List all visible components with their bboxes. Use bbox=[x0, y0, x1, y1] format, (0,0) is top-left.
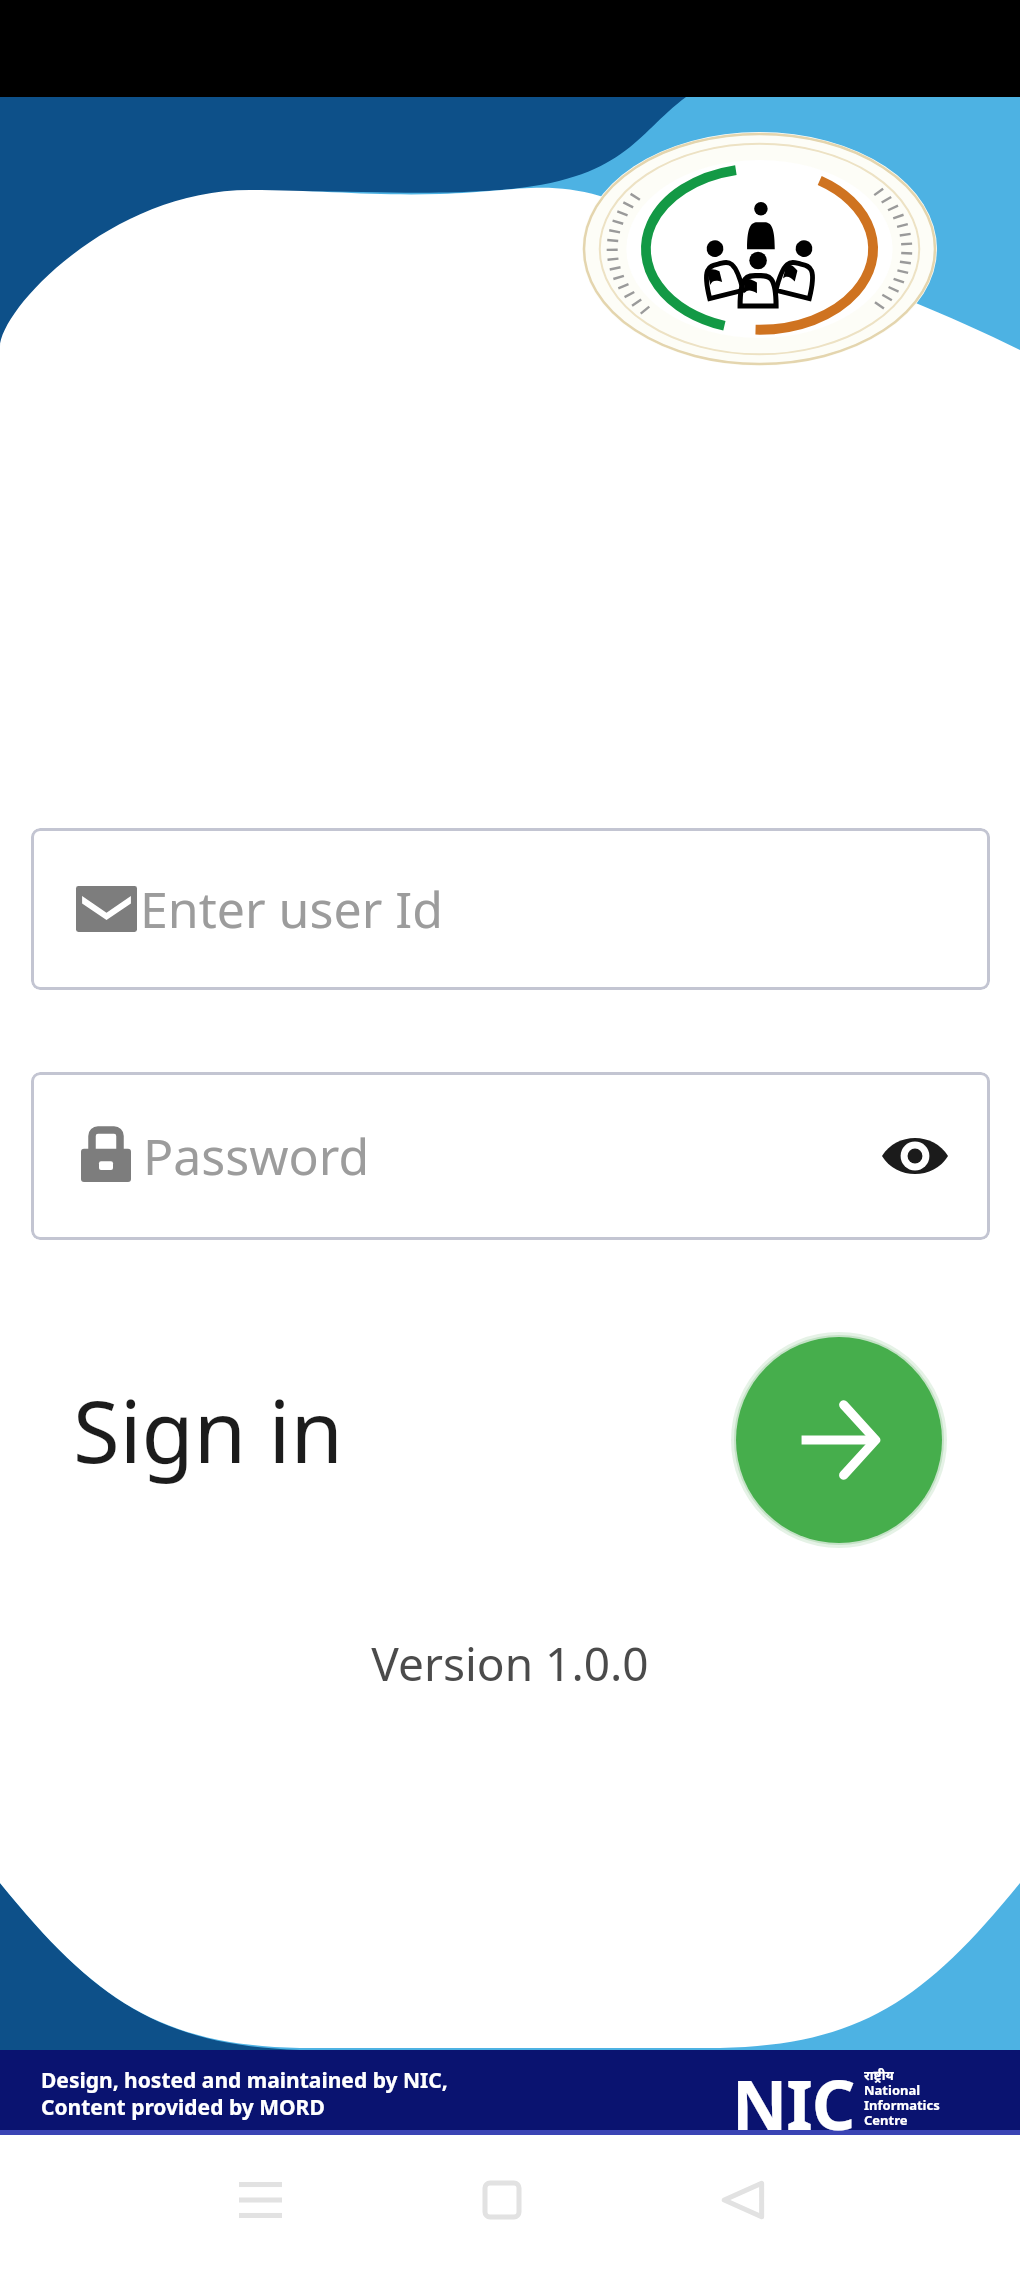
staticText: राष्ट्रीय National Informatics Centre bbox=[864, 2066, 940, 2129]
button[interactable]: Sign in bbox=[736, 1337, 942, 1543]
button[interactable]: Show password bbox=[872, 1113, 958, 1199]
button[interactable]: Sign in bbox=[73, 1372, 343, 1488]
staticText: Version 1.0.0 bbox=[0, 1632, 1020, 1695]
button[interactable]: Recent apps bbox=[188, 2150, 332, 2250]
staticText: Enter user Id bbox=[140, 875, 443, 943]
button[interactable]: Home bbox=[430, 2150, 574, 2250]
staticText: Password bbox=[143, 1122, 370, 1190]
button[interactable]: Back bbox=[672, 2150, 816, 2250]
button[interactable]: Password bbox=[31, 1072, 990, 1240]
staticText: NIC bbox=[732, 2057, 855, 2137]
button[interactable]: Enter user Id bbox=[31, 828, 990, 990]
staticText: Design, hosted and maintained by NIC, Co… bbox=[41, 2066, 448, 2121]
